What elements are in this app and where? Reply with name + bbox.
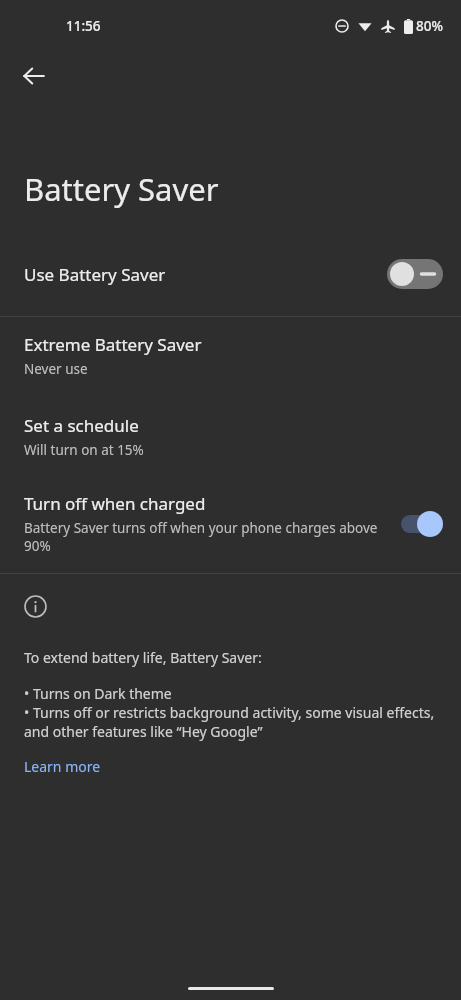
button[interactable]: Extreme Battery Saver [0,333,461,378]
staticText: Extreme Battery Saver [24,333,202,356]
staticText: • Turns on Dark theme [24,684,172,703]
staticText: Use Battery Saver [24,263,387,286]
staticText: Battery Saver [24,168,219,210]
staticText: • Turns off or restricts background acti… [24,703,443,741]
button[interactable]: Set a schedule [0,414,461,459]
staticText: Never use [24,360,88,378]
staticText: Learn more [24,757,101,776]
staticText: Set a schedule [24,414,139,437]
other: Information [24,595,47,618]
button[interactable]: Learn more [24,757,101,776]
staticText: 11:56 [66,17,101,35]
button[interactable]: Turn off when charged [0,492,461,555]
staticText: Turn off when charged [24,492,206,515]
button[interactable]: Back [10,52,58,100]
staticText: 80% [416,17,443,35]
staticText: To extend battery life, Battery Saver: [24,648,262,667]
staticText: Will turn on at 15% [24,441,144,459]
staticText: Battery Saver turns off when your phone … [24,519,389,555]
button[interactable]: Use Battery Saver [0,252,461,296]
